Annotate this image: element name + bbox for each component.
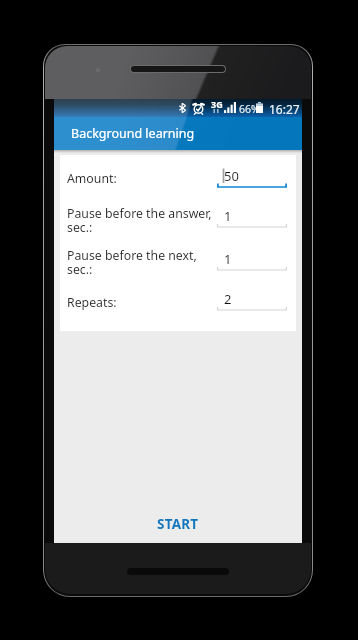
staticText: Repeats: (67, 294, 117, 311)
staticText: 1 (224, 207, 232, 225)
staticText: 3G (211, 98, 223, 110)
staticText: 50 (224, 167, 239, 185)
staticText: 16:27 (269, 101, 300, 117)
staticText: Pause before the next, sec.: (67, 247, 197, 278)
button[interactable]: START (54, 512, 302, 536)
staticText: Background learning (71, 125, 195, 142)
button[interactable]: 1 (217, 250, 287, 274)
button[interactable]: 50 (217, 167, 287, 191)
button[interactable]: 1 (217, 207, 287, 231)
staticText: 66% (239, 102, 260, 116)
staticText: 1 (224, 250, 232, 268)
staticText: Amount: (67, 170, 117, 187)
staticText: START (157, 515, 199, 533)
staticText: Pause before the answer, sec.: (67, 205, 212, 236)
button[interactable]: 2 (217, 290, 287, 314)
staticText: 2 (224, 290, 232, 308)
